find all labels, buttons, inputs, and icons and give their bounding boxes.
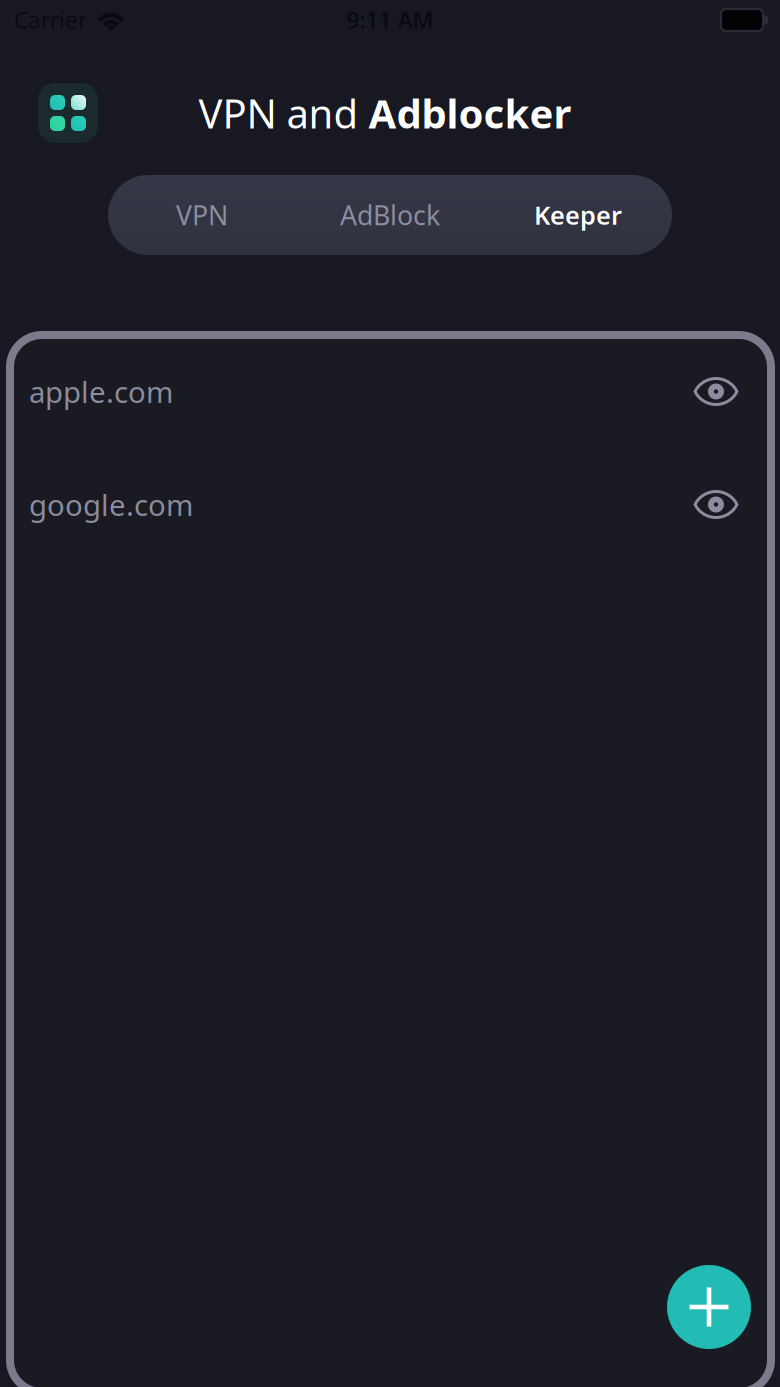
staticText: VPN — [176, 197, 228, 233]
staticText: google.com — [29, 485, 193, 524]
staticText: VPN and Adblocker — [198, 86, 571, 139]
button[interactable]: Add site — [667, 1265, 751, 1349]
button[interactable]: AdBlock — [296, 175, 484, 255]
staticText: Carrier — [14, 5, 87, 35]
button[interactable]: Keeper — [484, 175, 672, 255]
staticText: apple.com — [29, 372, 173, 411]
button[interactable]: google.com — [10, 448, 771, 561]
button[interactable]: apple.com — [10, 335, 771, 448]
staticText: Keeper — [534, 198, 622, 232]
staticText: AdBlock — [340, 197, 440, 233]
staticText: 9:11 AM — [346, 5, 433, 35]
button[interactable]: VPN — [108, 175, 296, 255]
